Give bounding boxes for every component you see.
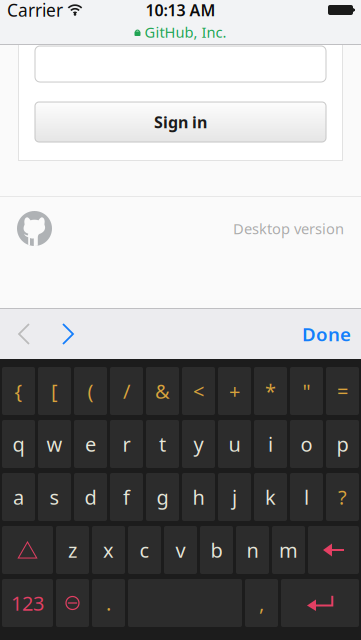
staticText: v xyxy=(175,537,185,563)
button[interactable]: d xyxy=(74,473,107,521)
button[interactable]: f xyxy=(110,473,143,521)
staticText: m xyxy=(279,537,298,563)
button[interactable]: b xyxy=(200,526,233,574)
staticText: ? xyxy=(338,484,347,510)
button[interactable]: 123 xyxy=(2,579,53,627)
button[interactable]: < xyxy=(182,367,215,415)
button[interactable]: " xyxy=(290,367,323,415)
staticText: d xyxy=(84,484,96,510)
staticText: Done xyxy=(302,322,351,346)
staticText: s xyxy=(49,484,59,510)
staticText: . xyxy=(106,590,111,616)
staticText: Sign in xyxy=(154,111,207,133)
staticText: " xyxy=(302,378,310,404)
button[interactable]: p xyxy=(326,420,359,468)
button[interactable]: c xyxy=(128,526,161,574)
button[interactable]: , xyxy=(245,579,278,627)
button[interactable]: & xyxy=(146,367,179,415)
staticText: , xyxy=(259,590,264,616)
button[interactable]: Desktop version xyxy=(233,219,344,238)
button[interactable]: Return xyxy=(281,579,359,627)
staticText: y xyxy=(193,431,203,457)
button[interactable]: o xyxy=(290,420,323,468)
staticText: h xyxy=(192,484,204,510)
staticText: { xyxy=(14,378,22,404)
staticText: Carrier xyxy=(7,0,63,21)
staticText: Desktop version xyxy=(233,219,344,238)
button[interactable]: Sign in xyxy=(35,102,326,142)
staticText: q xyxy=(12,431,24,457)
staticText: < xyxy=(193,378,204,404)
staticText: a xyxy=(13,484,24,510)
button[interactable]: a xyxy=(2,473,35,521)
button[interactable]: Previous field xyxy=(2,312,46,356)
staticText: l xyxy=(304,484,309,510)
button[interactable]: ? xyxy=(326,473,359,521)
staticText: GitHub, Inc. xyxy=(144,22,226,42)
button[interactable]: r xyxy=(110,420,143,468)
staticText: e xyxy=(85,431,96,457)
staticText: + xyxy=(229,378,240,404)
button[interactable]: Next keyboard xyxy=(56,579,89,627)
button[interactable]: + xyxy=(218,367,251,415)
staticText: b xyxy=(210,537,222,563)
button[interactable]: z xyxy=(56,526,89,574)
button[interactable]: i xyxy=(254,420,287,468)
staticText: = xyxy=(337,378,348,404)
button[interactable]: l xyxy=(290,473,323,521)
staticText: t xyxy=(159,431,166,457)
button[interactable]: x xyxy=(92,526,125,574)
button[interactable]: { xyxy=(2,367,35,415)
staticText: & xyxy=(155,378,170,404)
staticText: [ xyxy=(51,378,58,404)
staticText: r xyxy=(122,431,130,457)
staticText: g xyxy=(156,484,168,510)
staticText: k xyxy=(265,484,276,510)
staticText: ( xyxy=(87,378,93,404)
button[interactable]: t xyxy=(146,420,179,468)
button[interactable]: w xyxy=(38,420,71,468)
staticText: i xyxy=(268,431,273,457)
staticText: c xyxy=(139,537,149,563)
button[interactable]: Next field xyxy=(46,312,90,356)
staticText: p xyxy=(336,431,348,457)
staticText: o xyxy=(300,431,312,457)
button[interactable]: g xyxy=(146,473,179,521)
button[interactable]: q xyxy=(2,420,35,468)
button[interactable]: k xyxy=(254,473,287,521)
button[interactable]: * xyxy=(254,367,287,415)
staticText: 10:13 AM xyxy=(145,0,215,21)
staticText: * xyxy=(265,378,276,404)
button[interactable]: v xyxy=(164,526,197,574)
staticText: / xyxy=(123,378,130,404)
button[interactable]: e xyxy=(74,420,107,468)
button[interactable]: Delete xyxy=(308,526,359,574)
button[interactable]: n xyxy=(236,526,269,574)
button[interactable]: u xyxy=(218,420,251,468)
button[interactable]: = xyxy=(326,367,359,415)
staticText: f xyxy=(123,484,130,510)
staticText: u xyxy=(228,431,240,457)
button[interactable]: j xyxy=(218,473,251,521)
button[interactable]: . xyxy=(92,579,125,627)
staticText: 123 xyxy=(11,590,44,616)
staticText: w xyxy=(46,431,62,457)
staticText: j xyxy=(232,484,237,510)
staticText: z xyxy=(68,537,77,563)
button[interactable]: [ xyxy=(38,367,71,415)
button[interactable]: / xyxy=(110,367,143,415)
button[interactable]: m xyxy=(272,526,305,574)
button[interactable]: s xyxy=(38,473,71,521)
button[interactable]: y xyxy=(182,420,215,468)
button[interactable]: h xyxy=(182,473,215,521)
button[interactable]: Done xyxy=(295,312,358,356)
staticText: x xyxy=(103,537,114,563)
button[interactable]: ( xyxy=(74,367,107,415)
button[interactable]: Shift xyxy=(2,526,53,574)
staticText: n xyxy=(246,537,258,563)
